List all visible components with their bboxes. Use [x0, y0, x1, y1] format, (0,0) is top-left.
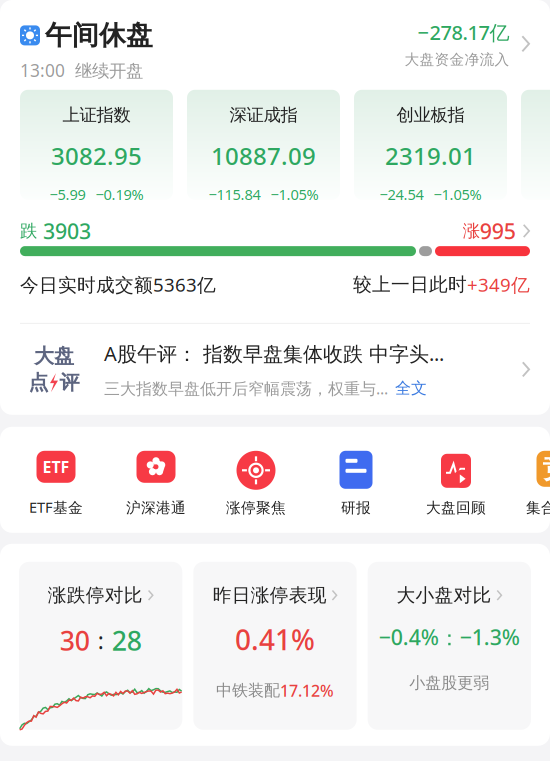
- button[interactable]: 科创50: [521, 90, 550, 200]
- staticText: 涨: [463, 220, 480, 242]
- staticText: 大盘: [34, 344, 74, 368]
- button[interactable]: 沪深港通: [106, 443, 206, 517]
- staticText: −0.4%：−1.3%: [379, 623, 520, 651]
- button[interactable]: 竞: [506, 443, 550, 517]
- staticText: −1.05%: [270, 185, 318, 204]
- staticText: 大小盘对比: [396, 584, 491, 607]
- staticText: 深证成指: [229, 104, 297, 126]
- button[interactable]: 上证指数: [20, 90, 173, 200]
- staticText: +349亿: [467, 272, 530, 297]
- staticText: 大盘资金净流入: [404, 51, 509, 69]
- button[interactable]: 涨停聚焦: [206, 443, 306, 517]
- staticText: 上证指数: [62, 104, 130, 126]
- staticText: :: [98, 625, 104, 655]
- staticText: 中铁装配: [216, 681, 280, 700]
- staticText: 3082.95: [51, 140, 142, 172]
- button[interactable]: 昨日涨停表现: [193, 562, 357, 730]
- button[interactable]: 大盘回顾: [406, 443, 506, 517]
- staticText: 995: [480, 217, 516, 245]
- staticText: 0.41%: [235, 621, 315, 658]
- staticText: 研报: [341, 499, 371, 517]
- staticText: 涨停聚焦: [226, 499, 286, 517]
- staticText: −5.99: [49, 185, 85, 204]
- staticText: 午间休盘: [45, 19, 153, 52]
- staticText: 28: [112, 623, 142, 658]
- button[interactable]: −278.17亿: [404, 19, 530, 69]
- staticText: −0.19%: [95, 185, 143, 204]
- staticText: 大盘回顾: [426, 499, 486, 517]
- staticText: 3903: [37, 217, 91, 245]
- staticText: 17.12%: [280, 680, 334, 701]
- staticText: −24.54: [379, 185, 423, 204]
- staticText: 小盘股更弱: [409, 673, 489, 693]
- staticText: ETF基金: [29, 497, 83, 517]
- staticText: −115.84: [208, 185, 260, 204]
- staticText: ETF: [42, 456, 69, 477]
- staticText: 竞: [542, 452, 550, 485]
- staticText: 点: [28, 370, 48, 395]
- button[interactable]: 研报: [306, 443, 406, 517]
- button[interactable]: 深证成指: [187, 90, 340, 200]
- staticText: 跌: [20, 220, 37, 242]
- button[interactable]: 大盘: [0, 324, 550, 415]
- staticText: 集合竞价: [526, 499, 550, 517]
- staticText: 13:00 继续开盘: [20, 59, 143, 82]
- staticText: −278.17亿: [417, 19, 509, 46]
- staticText: −1.05%: [433, 185, 481, 204]
- button[interactable]: 大小盘对比: [368, 562, 531, 730]
- staticText: 30: [60, 623, 90, 658]
- staticText: 三大指数早盘低开后窄幅震荡，权重与...: [104, 378, 388, 399]
- button[interactable]: ETF: [6, 443, 106, 517]
- staticText: 全文: [395, 378, 427, 398]
- button[interactable]: 涨跌停对比: [19, 562, 182, 730]
- staticText: 创业板指: [396, 104, 464, 126]
- staticText: 昨日涨停表现: [213, 584, 327, 607]
- staticText: A股午评： 指数早盘集体收跌 中字头...: [104, 340, 444, 367]
- staticText: 评: [59, 370, 79, 395]
- staticText: 沪深港通: [126, 499, 186, 517]
- staticText: 今日实时成交额5363亿: [20, 272, 216, 297]
- button[interactable]: 创业板指: [354, 90, 507, 200]
- staticText: 2319.01: [385, 140, 476, 172]
- staticText: 10887.09: [211, 140, 316, 172]
- staticText: 涨跌停对比: [48, 584, 143, 607]
- staticText: 较上一日此时: [353, 273, 467, 296]
